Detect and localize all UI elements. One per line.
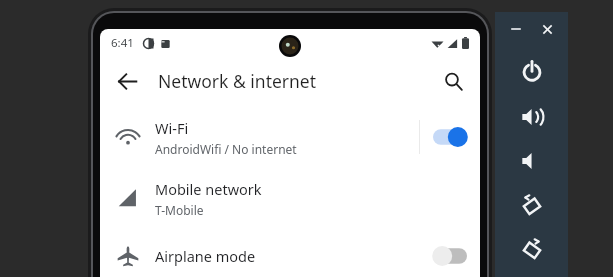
button[interactable]: Turn on Airplane mode: [420, 228, 480, 277]
staticText: AndroidWifi / No internet: [155, 141, 297, 157]
staticText: 6:41: [111, 35, 134, 51]
button[interactable]: Rotate right: [515, 232, 548, 265]
staticText: T-Mobile: [155, 202, 204, 218]
button[interactable]: Mobile network: [100, 168, 480, 228]
staticText: Network & internet: [158, 69, 317, 93]
button[interactable]: Airplane mode: [100, 228, 480, 277]
button[interactable]: Volume down: [515, 144, 548, 177]
button[interactable]: Back: [107, 61, 147, 101]
button[interactable]: Turn off Wi-Fi: [420, 106, 480, 168]
button[interactable]: Power: [515, 54, 548, 87]
button[interactable]: Volume up: [515, 100, 548, 133]
staticText: Mobile network: [155, 179, 262, 199]
button[interactable]: Minimize: [505, 18, 527, 40]
staticText: Airplane mode: [155, 246, 256, 266]
button[interactable]: Wi-Fi: [100, 106, 480, 168]
button[interactable]: Rotate left: [515, 188, 548, 221]
button[interactable]: Close: [536, 18, 558, 40]
button[interactable]: Search: [434, 62, 472, 100]
staticText: Wi-Fi: [155, 118, 189, 138]
